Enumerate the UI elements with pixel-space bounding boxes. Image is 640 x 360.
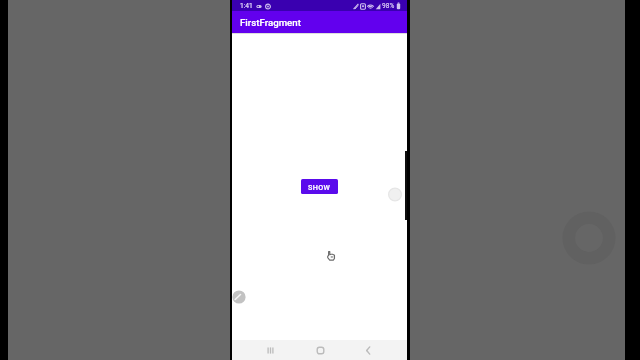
staticText: 98% — [382, 2, 395, 10]
button[interactable]: Recents — [260, 340, 280, 360]
staticText: SHOW — [308, 183, 331, 191]
button[interactable]: Home — [310, 340, 330, 360]
button[interactable]: SHOW — [301, 179, 338, 194]
button[interactable]: Back — [358, 340, 378, 360]
staticText: 1:41 — [240, 2, 253, 10]
staticText: FirstFragment — [240, 17, 301, 28]
